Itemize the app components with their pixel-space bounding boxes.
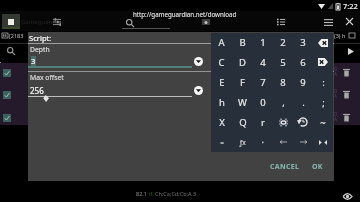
- staticText: h: [219, 96, 225, 109]
- button[interactable]: Search: [7, 47, 15, 55]
- button[interactable]: Tune: [53, 18, 61, 26]
- button[interactable]: Menu: [324, 18, 333, 27]
- button[interactable]: 8: [273, 72, 293, 92]
- staticText: [2183: [9, 32, 24, 39]
- button[interactable]: 9: [293, 72, 313, 92]
- staticText: A: [218, 36, 225, 49]
- staticText: Ch;Ca;Cd;Cb;A 3: [155, 190, 197, 197]
- staticText: 1: [260, 36, 266, 49]
- staticText: 82.1: [136, 190, 147, 197]
- staticText: F: [240, 76, 245, 89]
- other: Move left: [280, 140, 287, 144]
- button[interactable]: Select: [3, 91, 11, 99]
- button[interactable]: Bookmarks: [277, 18, 285, 26]
- staticText: 3: [31, 56, 36, 66]
- button[interactable]: Show dropdown: [194, 86, 203, 95]
- button[interactable]: :: [313, 72, 333, 92]
- button[interactable]: F: [232, 72, 253, 92]
- button[interactable]: Select: [3, 114, 11, 122]
- other: Backspace: [318, 39, 328, 47]
- staticText: 9: [300, 76, 306, 89]
- button[interactable]: Close: [346, 18, 353, 25]
- staticText: 6: [300, 56, 306, 69]
- staticText: 7: [260, 76, 266, 89]
- staticText: 4: [260, 56, 266, 69]
- button[interactable]: 0: [253, 92, 273, 112]
- button[interactable]: Delete: [343, 90, 350, 99]
- button[interactable]: h: [211, 92, 232, 112]
- button[interactable]: 4: [253, 52, 273, 72]
- button[interactable]: History: [293, 112, 313, 132]
- button[interactable]: 7: [253, 72, 273, 92]
- button[interactable]: Run: [348, 48, 354, 55]
- staticText: Depth: [30, 45, 50, 54]
- button[interactable]: CANCEL: [268, 158, 302, 176]
- staticText: if: [149, 190, 153, 197]
- button[interactable]: X: [211, 112, 232, 132]
- button[interactable]: 3: [293, 33, 313, 52]
- button[interactable]: r: [253, 112, 273, 132]
- other: Settings: [279, 118, 288, 127]
- staticText: D A: [334, 111, 338, 122]
- staticText: 5: [280, 56, 286, 69]
- button[interactable]: Select: [3, 69, 11, 77]
- button[interactable]: ,: [273, 92, 293, 112]
- button[interactable]: Show dropdown: [194, 57, 203, 66]
- button[interactable]: Move right: [293, 132, 313, 152]
- staticText: Max offset: [30, 73, 64, 82]
- button[interactable]: Delete: [343, 113, 350, 122]
- button[interactable]: B: [232, 33, 253, 52]
- button[interactable]: Delete: [343, 68, 350, 77]
- button[interactable]: ~: [313, 112, 333, 132]
- button[interactable]: D: [232, 52, 253, 72]
- staticText: X: [219, 116, 225, 129]
- button[interactable]: W: [232, 92, 253, 112]
- staticText: Script:: [29, 33, 52, 43]
- staticText: 7:22: [343, 1, 358, 11]
- staticText: ,: [282, 96, 285, 109]
- other: History: [298, 117, 308, 127]
- staticText: W: [238, 96, 247, 109]
- staticText: B: [239, 36, 246, 49]
- staticText: 2: [280, 36, 286, 49]
- button[interactable]: Move left: [273, 132, 293, 152]
- button[interactable]: [253, 132, 273, 152]
- staticText: D A: [334, 66, 338, 77]
- button[interactable]: OK: [306, 158, 328, 176]
- button[interactable]: 6: [293, 52, 313, 72]
- staticText: 3: [300, 36, 306, 49]
- button[interactable]: C: [211, 52, 232, 72]
- staticText: C: [218, 56, 225, 69]
- button[interactable]: Backspace: [313, 33, 333, 52]
- staticText: http://gameguardian.net/download: [133, 10, 237, 18]
- button[interactable]: Q: [232, 112, 253, 132]
- staticText: OK: [312, 162, 323, 172]
- button[interactable]: Toggle visibility: [343, 193, 352, 200]
- staticText: CANCEL: [270, 162, 300, 172]
- button[interactable]: 5: [273, 52, 293, 72]
- button[interactable]: 2: [273, 33, 293, 52]
- button[interactable]: Delete forward: [313, 52, 333, 72]
- button[interactable]: E: [211, 72, 232, 92]
- staticText: =: [220, 138, 224, 147]
- button[interactable]: Settings: [273, 112, 293, 132]
- button[interactable]: =: [211, 132, 232, 152]
- staticText: E: [219, 76, 225, 89]
- other: Delete forward: [318, 58, 328, 66]
- staticText: 8: [280, 76, 286, 89]
- button[interactable]: ƒx: [232, 132, 253, 152]
- staticText: ~: [320, 116, 326, 129]
- button[interactable]: .: [293, 92, 313, 112]
- button[interactable]: 1: [253, 33, 273, 52]
- button[interactable]: Search: [126, 19, 134, 27]
- staticText: ;: [322, 96, 325, 109]
- staticText: (3) h: [334, 32, 346, 39]
- button[interactable]: Collapse: [313, 132, 333, 152]
- other: Collapse: [319, 140, 327, 145]
- staticText: r: [261, 116, 265, 129]
- button[interactable]: App icon: [2, 14, 20, 29]
- button[interactable]: A: [211, 33, 232, 52]
- staticText: 0: [260, 96, 266, 109]
- button[interactable]: ;: [313, 92, 333, 112]
- staticText: Q: [239, 116, 247, 129]
